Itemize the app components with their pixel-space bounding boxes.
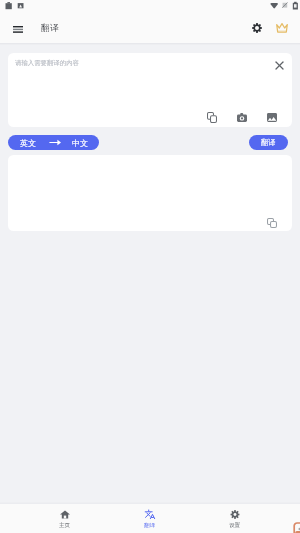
staticText: 翻译 (41, 22, 59, 33)
button[interactable]: 主页 (23, 504, 107, 533)
button[interactable]: Premium (271, 17, 293, 39)
staticText: 英文 (20, 138, 36, 148)
button[interactable]: Copy (203, 108, 221, 126)
button[interactable]: Gallery (263, 108, 281, 126)
staticText: 翻译 (261, 138, 276, 147)
button[interactable]: Settings (246, 17, 268, 39)
staticText: 中文 (72, 138, 88, 148)
button[interactable]: Camera (233, 108, 251, 126)
button[interactable]: 翻译 (107, 504, 192, 533)
staticText: 设置 (229, 522, 241, 529)
staticText: 请输入需要翻译的内容 (15, 59, 79, 67)
button[interactable]: 英文 (8, 135, 99, 150)
button[interactable]: 翻译 (249, 135, 288, 150)
button[interactable]: Menu (6, 17, 30, 41)
button[interactable]: Text to translate (8, 53, 292, 127)
button[interactable]: 设置 (192, 504, 277, 533)
button[interactable]: Clear (269, 55, 289, 75)
staticText: 翻译 (144, 522, 156, 529)
button[interactable]: Copy translation (263, 214, 281, 231)
staticText: 主页 (59, 522, 71, 529)
button[interactable]: Translation result (8, 155, 292, 231)
